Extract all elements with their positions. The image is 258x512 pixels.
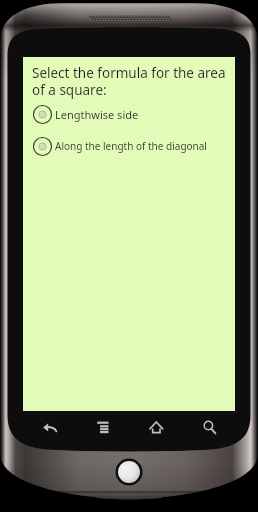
staticText: Along the length of the diagonal [55,139,207,153]
button[interactable]: Menu [76,412,129,444]
button[interactable]: Home [129,412,182,444]
button[interactable]: Along the length of the diagonal [32,134,233,158]
button[interactable]: Back [23,412,76,444]
button[interactable]: Search [182,412,235,444]
staticText: Lengthwise side [55,107,139,122]
button[interactable]: Lengthwise side [32,102,233,126]
staticText: Select the formula for the area of a squ… [32,64,233,99]
